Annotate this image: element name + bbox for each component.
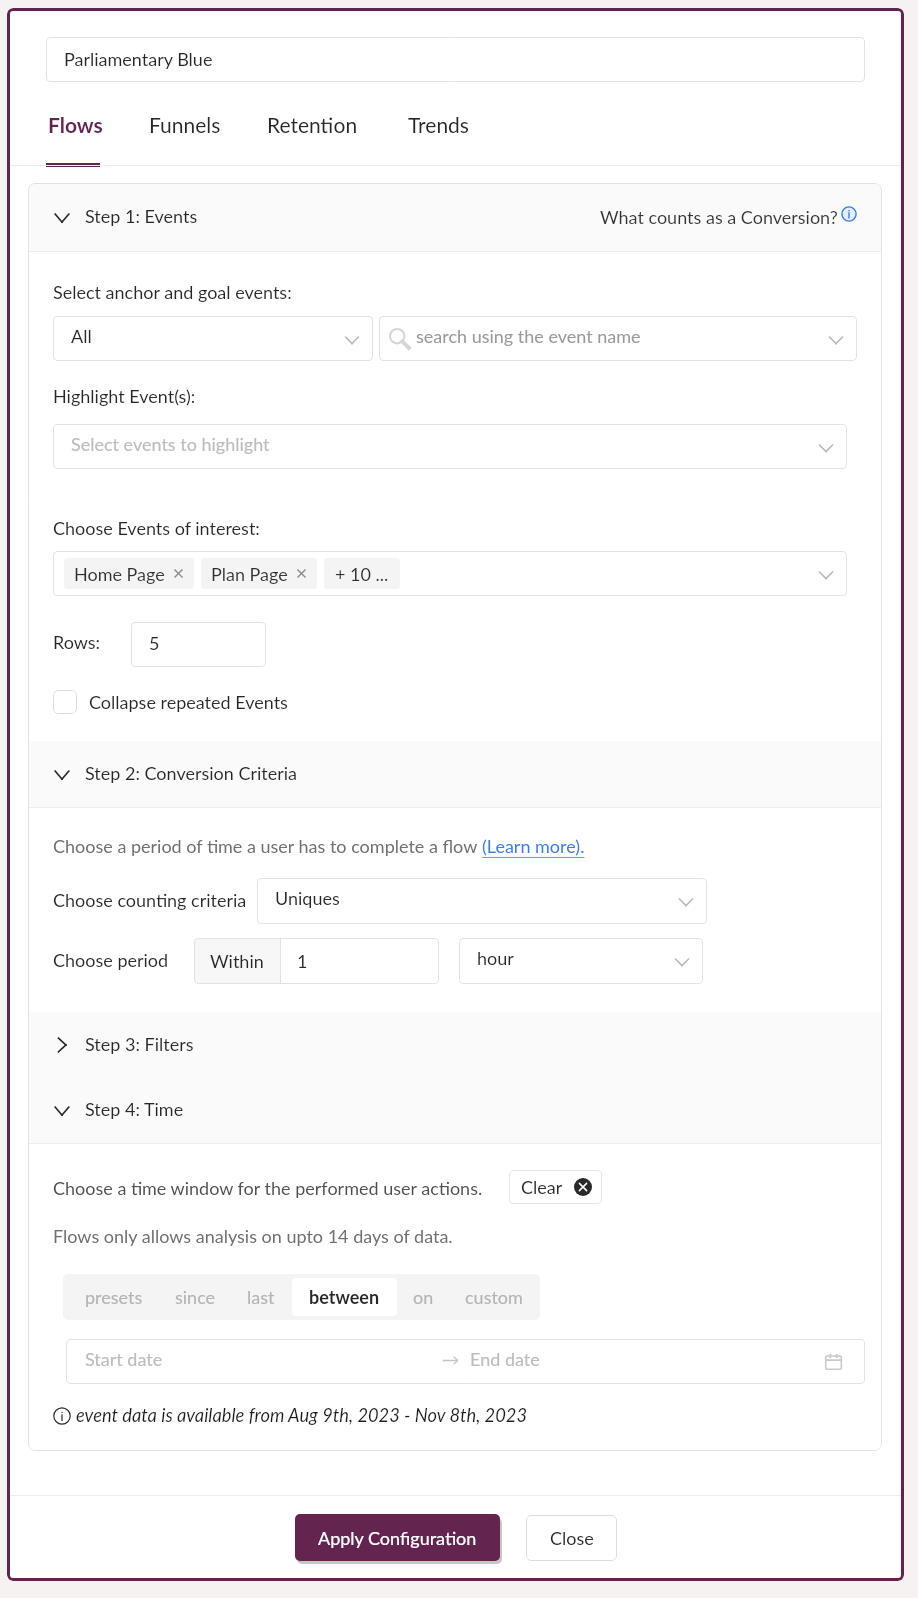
staticText: between	[309, 1286, 380, 1308]
staticText: Start date	[85, 1348, 163, 1370]
button[interactable]: between	[292, 1278, 397, 1316]
staticText: Rows:	[53, 631, 101, 653]
button[interactable]: hour	[459, 938, 703, 984]
staticText: event data is available from Aug 9th, 20…	[76, 1404, 528, 1426]
button[interactable]: What counts as a Conversion?	[600, 201, 857, 223]
staticText: Retention	[267, 112, 358, 137]
button[interactable]: on	[407, 1278, 440, 1316]
staticText: What counts as a Conversion?	[600, 206, 838, 228]
button[interactable]: All	[53, 316, 373, 361]
staticText: Parliamentary Blue	[64, 48, 213, 70]
button[interactable]: 5	[131, 622, 266, 667]
staticText: 1	[297, 950, 308, 972]
staticText: since	[175, 1286, 216, 1308]
staticText: Close	[550, 1527, 594, 1549]
staticText: Funnels	[149, 112, 221, 137]
button[interactable]: Within	[194, 938, 280, 984]
button[interactable]: Retention	[260, 100, 358, 166]
button[interactable]: Step 3: Filters	[28, 1012, 882, 1078]
button[interactable]: Select events to highlight	[53, 424, 847, 469]
staticText: Collapse repeated Events	[89, 691, 288, 713]
staticText: last	[247, 1286, 275, 1308]
staticText: Step 1: Events	[85, 205, 198, 227]
button[interactable]: Collapse repeated Events	[53, 686, 288, 718]
staticText: Choose a time window for the performed u…	[53, 1177, 483, 1199]
staticText: Trends	[408, 112, 469, 137]
button[interactable]: custom	[459, 1278, 529, 1316]
staticText: Select events to highlight	[71, 433, 270, 455]
staticText: Choose counting criteria	[53, 889, 247, 911]
button[interactable]: Close	[526, 1515, 617, 1561]
button[interactable]: Plan Page	[201, 558, 317, 589]
staticText: Uniques	[275, 887, 340, 909]
staticText: Choose a period of time a user has to co…	[53, 835, 482, 857]
staticText: Plan Page	[211, 563, 288, 585]
button[interactable]: Step 2: Conversion Criteria	[28, 741, 882, 807]
staticText: All	[71, 325, 92, 347]
staticText: Clear	[521, 1176, 563, 1198]
button[interactable]: Clear	[509, 1170, 602, 1204]
staticText: search using the event name	[416, 325, 641, 347]
staticText: presets	[85, 1286, 143, 1308]
other: What counts as a Conversion	[841, 206, 857, 222]
button[interactable]: (Learn more).	[482, 835, 585, 857]
staticText: Step 2: Conversion Criteria	[85, 762, 298, 784]
button[interactable]: Start date	[66, 1339, 865, 1384]
button[interactable]: Apply Configuration	[295, 1514, 500, 1561]
button[interactable]: 1	[281, 938, 439, 984]
button[interactable]: presets	[79, 1278, 148, 1316]
staticText: custom	[465, 1286, 523, 1308]
staticText: + 10 ...	[335, 563, 389, 585]
staticText: Step 3: Filters	[85, 1033, 194, 1055]
staticText: Within	[210, 950, 264, 972]
staticText: Select anchor and goal events:	[53, 281, 292, 303]
button[interactable]: Step 4: Time	[28, 1077, 882, 1143]
button[interactable]: + 10 ...	[324, 558, 400, 589]
button[interactable]: last	[241, 1278, 280, 1316]
staticText: Highlight Event(s):	[53, 385, 196, 407]
staticText: 5	[149, 632, 160, 654]
staticText: Choose Events of interest:	[53, 517, 260, 539]
button[interactable]: Funnels	[142, 100, 220, 166]
staticText: Choose period	[53, 949, 169, 971]
staticText: on	[413, 1286, 434, 1308]
staticText: Flows	[48, 112, 103, 137]
button[interactable]: Trends	[401, 100, 467, 166]
staticText: Flows only allows analysis on upto 14 da…	[53, 1225, 453, 1247]
button[interactable]: Uniques	[257, 878, 707, 924]
button[interactable]: since	[169, 1278, 221, 1316]
staticText: Home Page	[74, 563, 165, 585]
button[interactable]: Parliamentary Blue	[46, 37, 865, 82]
staticText: hour	[477, 947, 514, 969]
staticText: Apply Configuration	[318, 1527, 477, 1549]
staticText: End date	[470, 1348, 540, 1370]
button[interactable]: Step 1: Events	[28, 183, 882, 251]
button[interactable]: search using the event name	[379, 316, 857, 361]
button[interactable]: Home Page	[53, 551, 847, 596]
button[interactable]: Flows	[41, 100, 105, 166]
button[interactable]: Home Page	[64, 558, 194, 589]
staticText: Step 4: Time	[85, 1098, 184, 1120]
